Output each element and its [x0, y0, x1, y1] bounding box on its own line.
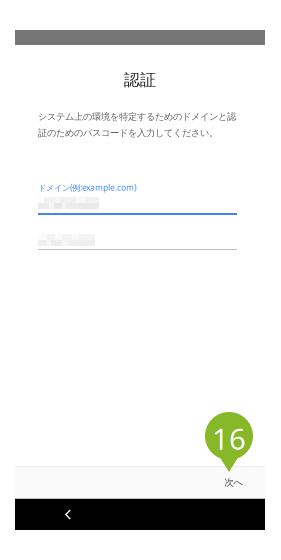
staticText: 16 — [212, 419, 246, 458]
staticText: 次へ — [224, 477, 243, 488]
staticText: 認証 — [124, 70, 156, 90]
staticText: ドメイン(例:example.com) — [38, 182, 136, 193]
button[interactable]: 次へ — [206, 466, 262, 499]
button[interactable]: Back — [54, 499, 82, 530]
staticText: システム上の環境を特定するためのドメインと認証のためのパスコードを入力してくださ… — [38, 111, 236, 139]
